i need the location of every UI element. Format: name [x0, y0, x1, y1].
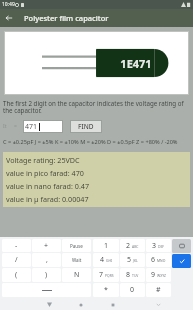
button[interactable]: 471: [23, 120, 63, 133]
staticText: 4: [100, 255, 105, 265]
button[interactable]: 2 ABC: [120, 239, 145, 252]
button[interactable]: ): [32, 268, 61, 282]
staticText: =: [14, 123, 17, 130]
staticText: /: [15, 255, 18, 265]
staticText: GHI: [106, 258, 113, 263]
button[interactable]: 5 JKL: [120, 253, 145, 267]
button[interactable]: *: [93, 283, 119, 297]
button[interactable]: 7 PQRS: [93, 268, 119, 282]
staticText: DEF: [158, 244, 165, 249]
staticText: N: [74, 270, 80, 280]
button[interactable]: ,: [32, 253, 61, 267]
button[interactable]: N: [62, 268, 91, 282]
button[interactable]: FIND: [70, 120, 102, 133]
staticText: ): [45, 270, 48, 280]
staticText: 471: [25, 122, 38, 132]
staticText: It: [3, 123, 7, 130]
staticText: 8: [126, 270, 131, 280]
staticText: MNO: [157, 258, 166, 263]
button[interactable]: Backspace: [172, 239, 191, 253]
staticText: 6: [151, 255, 156, 265]
staticText: 0: [130, 285, 135, 295]
button[interactable]: Home: [65, 299, 97, 310]
staticText: +: [44, 241, 49, 251]
button[interactable]: 0: [120, 283, 145, 297]
staticText: The first 2 digit on the capacitor indic…: [3, 99, 190, 115]
staticText: ABC: [132, 244, 139, 249]
staticText: 2: [126, 241, 131, 251]
staticText: 9: [151, 270, 156, 280]
staticText: 7: [99, 270, 104, 280]
staticText: value in µ farad: 0.00047: [6, 194, 89, 204]
staticText: -: [15, 241, 18, 251]
staticText: #: [156, 285, 161, 295]
staticText: 1: [104, 241, 109, 251]
staticText: JKL: [133, 258, 138, 263]
button[interactable]: Back: [0, 9, 18, 27]
button[interactable]: 8 TUV: [120, 268, 145, 282]
button[interactable]: 1: [93, 239, 119, 252]
staticText: Voltage rating: 25VDC: [6, 155, 80, 165]
button[interactable]: 9 WXYZ: [146, 268, 171, 282]
staticText: 5: [127, 255, 132, 265]
button[interactable]: Space: [2, 283, 91, 297]
staticText: 3: [152, 241, 157, 251]
staticText: WXYZ: [157, 273, 166, 278]
staticText: Wait: [72, 257, 82, 263]
button[interactable]: +: [32, 239, 61, 252]
button[interactable]: Enter: [172, 254, 191, 268]
button[interactable]: 6 MNO: [146, 253, 171, 267]
button[interactable]: (: [2, 268, 31, 282]
staticText: TUV: [132, 273, 139, 278]
button[interactable]: Pause: [62, 239, 91, 252]
staticText: value in pico farad: 470: [6, 168, 84, 178]
button[interactable]: Wait: [62, 253, 91, 267]
staticText: 1E471: [120, 56, 152, 71]
staticText: Pause: [70, 243, 83, 249]
staticText: ,: [46, 255, 48, 265]
button[interactable]: Back: [34, 299, 65, 310]
staticText: *: [104, 285, 108, 295]
button[interactable]: 4 GHI: [93, 253, 119, 267]
staticText: C = ±0.25pF J = ±5% K = ±10% M = ±20% D …: [3, 138, 190, 146]
staticText: PQRS: [105, 273, 114, 278]
button[interactable]: Hide keyboard: [142, 299, 174, 310]
staticText: (: [15, 270, 18, 280]
button[interactable]: /: [2, 253, 31, 267]
button[interactable]: Recent apps: [97, 299, 129, 310]
staticText: Polyester film capacitor: [24, 13, 109, 23]
staticText: 10:49: [2, 1, 15, 8]
button[interactable]: 3 DEF: [146, 239, 171, 252]
button[interactable]: -: [2, 239, 31, 252]
button[interactable]: #: [146, 283, 171, 297]
staticText: value in nano farad: 0.47: [6, 181, 90, 191]
staticText: FIND: [78, 122, 94, 131]
